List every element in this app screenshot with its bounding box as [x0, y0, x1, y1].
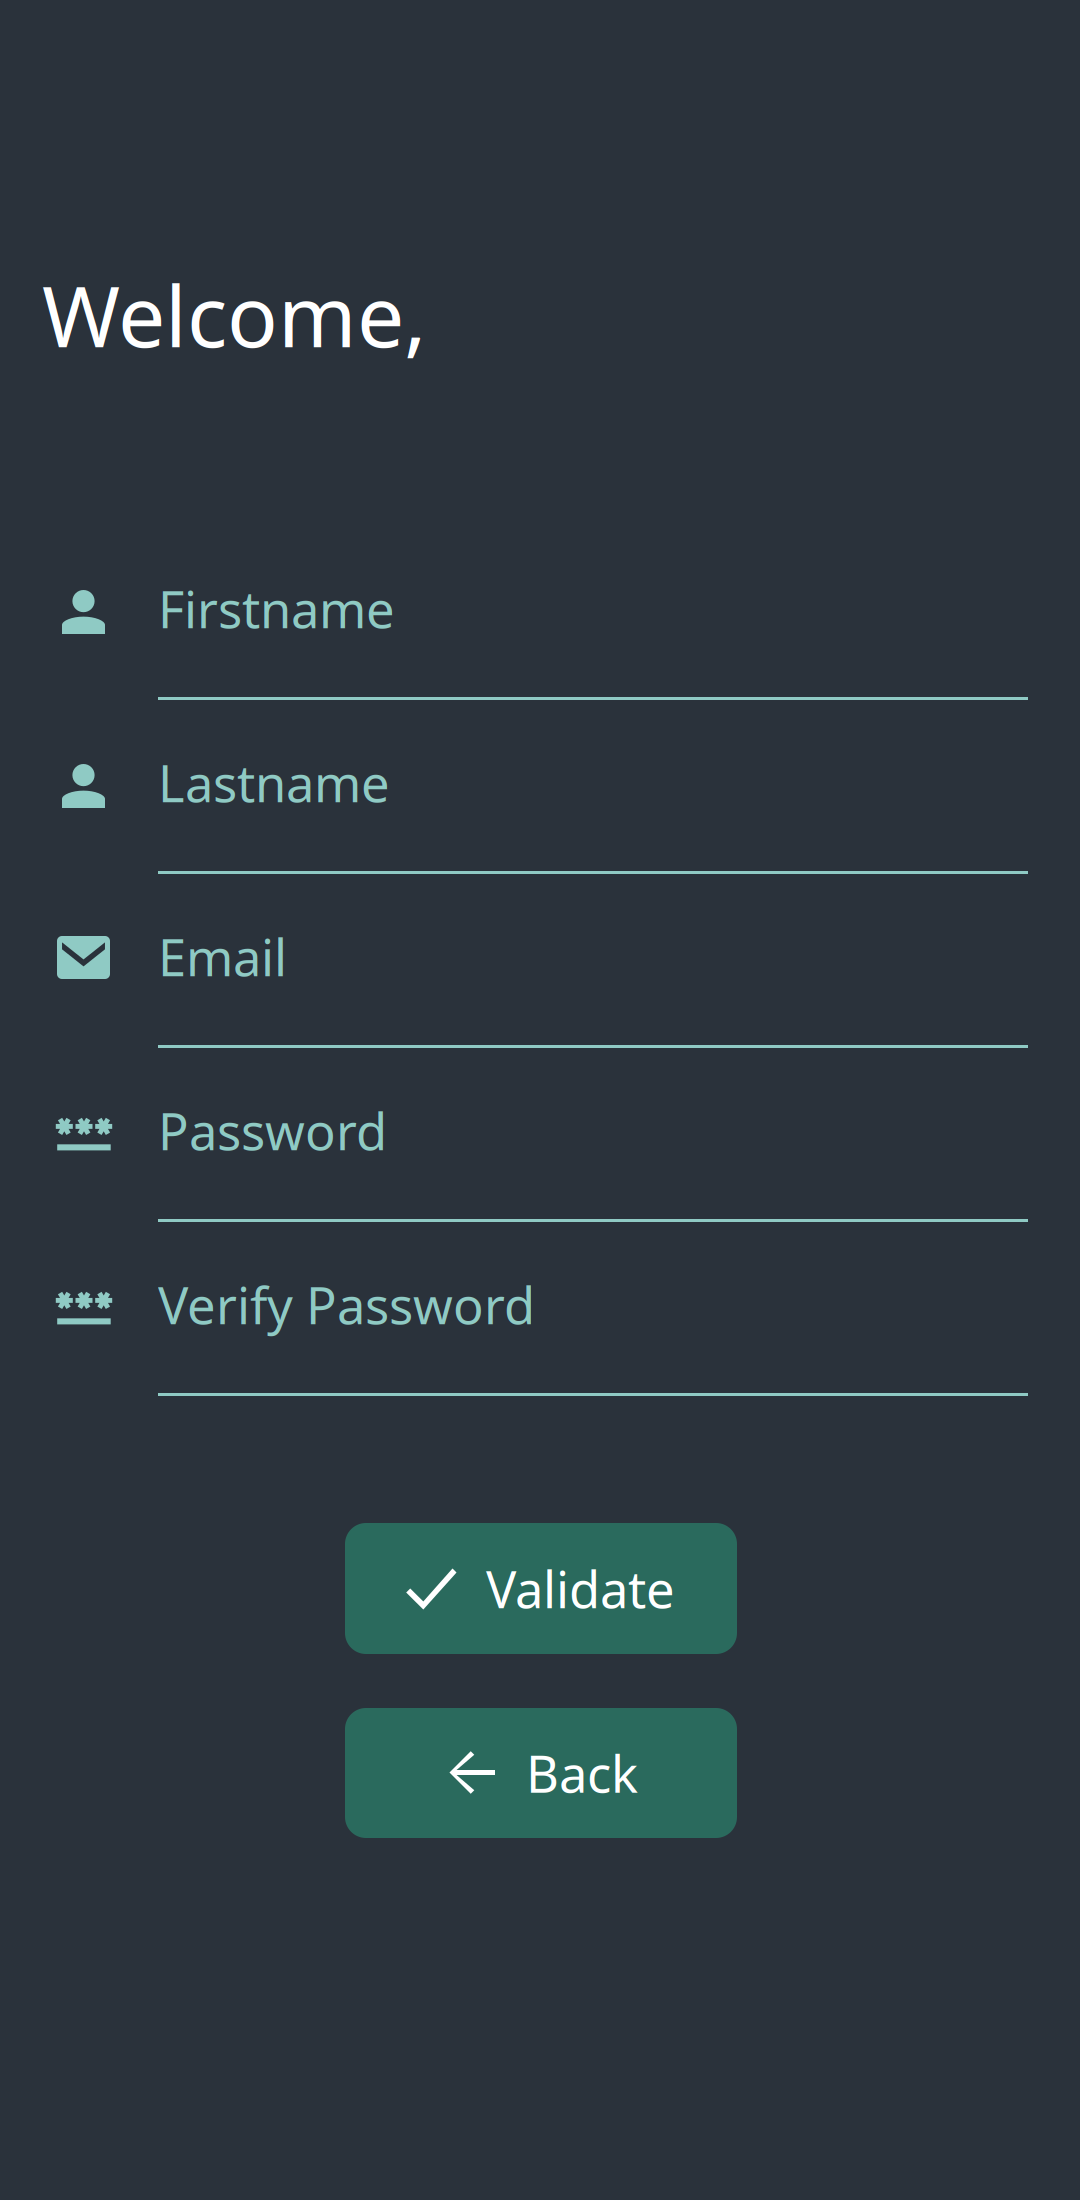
staticText: Back	[526, 1739, 638, 1807]
staticText: Firstname	[158, 575, 395, 642]
staticText: Password	[158, 1097, 387, 1164]
button[interactable]: Back	[345, 1708, 737, 1838]
staticText: Verify Password	[158, 1271, 535, 1338]
staticText: Lastname	[158, 749, 390, 816]
button[interactable]: Validate	[345, 1523, 737, 1654]
staticText: Validate	[486, 1555, 675, 1622]
staticText: Welcome,	[42, 259, 427, 370]
staticText: Email	[158, 923, 287, 990]
